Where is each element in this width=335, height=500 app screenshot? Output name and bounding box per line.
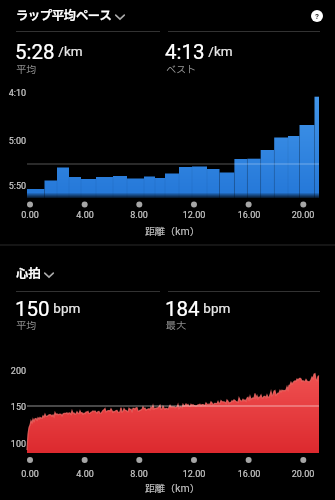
staticText: 20.00	[283, 210, 323, 221]
staticText: 平均	[16, 62, 36, 77]
staticText: 5:00	[0, 136, 26, 147]
button[interactable]: ラップ平均ペース	[16, 7, 125, 26]
staticText: 150	[15, 297, 50, 321]
staticText: 16.00	[229, 469, 269, 480]
staticText: 距離（km）	[145, 224, 200, 239]
button[interactable]: ?	[311, 10, 323, 22]
staticText: 12.00	[174, 469, 214, 480]
staticText: 0.00	[10, 469, 50, 480]
staticText: 4:10	[0, 88, 26, 99]
staticText: /km	[55, 43, 83, 59]
staticText: 心拍	[16, 265, 41, 284]
staticText: ベスト	[166, 62, 196, 77]
staticText: 4.00	[65, 210, 105, 221]
staticText: 16.00	[229, 210, 269, 221]
staticText: 184	[165, 297, 200, 321]
staticText: 4:13	[165, 40, 205, 64]
staticText: bpm	[50, 300, 81, 316]
staticText: 0.00	[10, 210, 50, 221]
staticText: 200	[0, 366, 26, 377]
staticText: 5:50	[0, 181, 26, 192]
staticText: 最大	[166, 318, 186, 333]
button[interactable]: 心拍	[16, 265, 54, 284]
staticText: 12.00	[174, 210, 214, 221]
staticText: /km	[205, 43, 233, 59]
staticText: 5:28	[15, 40, 55, 64]
staticText: ラップ平均ペース	[16, 7, 112, 26]
staticText: 距離（km）	[145, 481, 200, 496]
staticText: ?	[315, 12, 319, 21]
staticText: 8.00	[119, 210, 159, 221]
staticText: 100	[0, 439, 26, 450]
staticText: 20.00	[283, 469, 323, 480]
staticText: 4.00	[65, 469, 105, 480]
staticText: 150	[0, 402, 26, 413]
staticText: bpm	[200, 300, 231, 316]
staticText: 8.00	[119, 469, 159, 480]
staticText: 平均	[16, 318, 36, 333]
